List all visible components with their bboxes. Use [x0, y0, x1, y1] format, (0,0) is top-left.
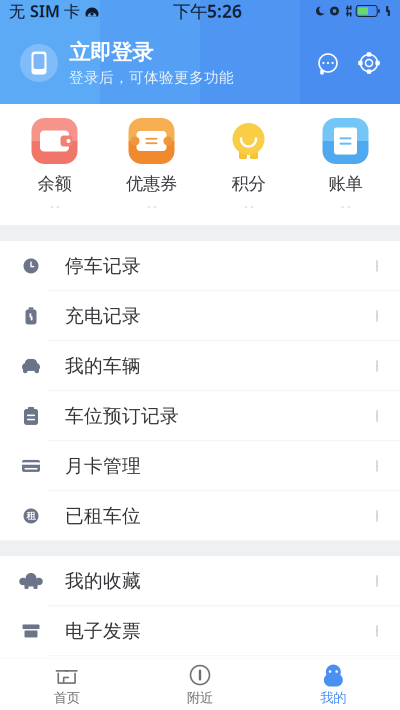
button[interactable]: 账单 — [297, 118, 394, 212]
staticText: 车位预订记录 — [65, 404, 179, 427]
staticText: 附近 — [187, 690, 213, 706]
button[interactable]: 附近 — [133, 659, 267, 710]
button[interactable]: 充电记录 — [0, 291, 400, 341]
staticText: 首页 — [54, 690, 80, 706]
staticText: 我的 — [320, 690, 346, 706]
staticText: 余额 — [37, 173, 71, 194]
staticText: 已租车位 — [65, 504, 141, 527]
button[interactable]: 积分 — [200, 118, 297, 212]
button[interactable]: 首页 — [0, 659, 133, 710]
staticText: - - — [50, 198, 59, 212]
button[interactable]: 消息 — [316, 51, 340, 75]
staticText: 账单 — [328, 173, 362, 194]
staticText: 登录后，可体验更多功能 — [69, 69, 234, 87]
button[interactable]: 电子发票 — [0, 606, 400, 656]
staticText: 电子发票 — [65, 619, 141, 642]
staticText: 申诉记录 — [65, 669, 141, 692]
staticText: 积分 — [231, 173, 265, 194]
staticText: 我的收藏 — [65, 569, 141, 592]
staticText: 停车记录 — [65, 254, 141, 277]
staticText: 月卡管理 — [65, 454, 141, 477]
button[interactable]: 设置 — [357, 51, 381, 75]
staticText: 充电记录 — [65, 304, 141, 327]
staticText: 租 — [26, 510, 35, 522]
button[interactable]: 我的车辆 — [0, 341, 400, 391]
staticText: - - — [341, 198, 350, 212]
button[interactable]: 我的收藏 — [0, 556, 400, 606]
button[interactable]: 余额 — [6, 118, 103, 212]
button[interactable]: 优惠券 — [103, 118, 200, 212]
button[interactable]: 车位预订记录 — [0, 391, 400, 441]
staticText: 优惠券 — [126, 173, 177, 194]
button[interactable]: 租 — [0, 491, 400, 540]
staticText: 立即登录 — [69, 39, 153, 66]
button[interactable]: 月卡管理 — [0, 441, 400, 491]
staticText: 无 SIM 卡 — [9, 0, 80, 22]
button[interactable]: 停车记录 — [0, 241, 400, 291]
button[interactable]: 申诉记录 — [0, 656, 400, 706]
staticText: - - — [244, 198, 253, 212]
button[interactable]: 立即登录 — [20, 39, 234, 87]
staticText: 下午5:26 — [173, 0, 242, 22]
staticText: - - — [147, 198, 156, 212]
button[interactable]: 我的 — [267, 659, 400, 710]
staticText: 我的车辆 — [65, 354, 141, 377]
